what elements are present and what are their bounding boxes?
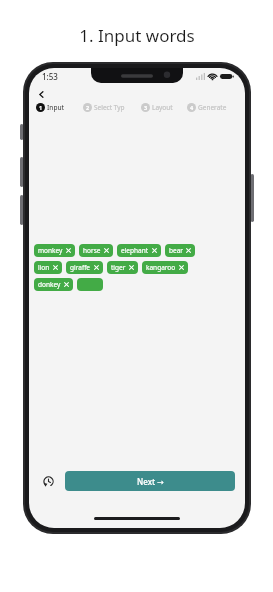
- button[interactable]: monkey: [34, 244, 75, 257]
- staticText: donkey: [38, 280, 61, 289]
- staticText: 4: [190, 104, 194, 111]
- button[interactable]: donkey: [34, 278, 73, 291]
- staticText: Layout: [152, 103, 173, 112]
- button[interactable]: History: [37, 470, 59, 492]
- button[interactable]: Back: [34, 88, 48, 101]
- staticText: kangaroo: [146, 263, 176, 272]
- button[interactable]: bear: [165, 244, 195, 257]
- button[interactable]: giraffe: [66, 261, 103, 274]
- button[interactable]: lion: [34, 261, 62, 274]
- staticText: 1. Input words: [79, 24, 195, 47]
- button[interactable]: 4: [187, 103, 238, 112]
- staticText: horse: [83, 246, 101, 255]
- staticText: Input: [47, 103, 64, 112]
- staticText: 2: [86, 104, 90, 111]
- staticText: elephant: [121, 246, 149, 255]
- staticText: giraffe: [70, 263, 91, 272]
- staticText: monkey: [38, 246, 63, 255]
- button[interactable]: tiger: [107, 261, 138, 274]
- button[interactable]: 3: [141, 103, 187, 112]
- staticText: Select Typ: [94, 103, 125, 112]
- button[interactable]: horse: [79, 244, 113, 257]
- button[interactable]: elephant: [117, 244, 161, 257]
- staticText: 1: [39, 104, 43, 111]
- staticText: tiger: [111, 263, 126, 272]
- staticText: Next →: [137, 476, 164, 487]
- button[interactable]: kangaroo: [142, 261, 188, 274]
- staticText: 3: [144, 104, 148, 111]
- staticText: lion: [38, 263, 50, 272]
- button[interactable]: 2: [83, 103, 141, 112]
- button[interactable]: Next →: [65, 471, 235, 491]
- staticText: bear: [169, 246, 183, 255]
- button[interactable]: Add word: [77, 278, 103, 291]
- button[interactable]: 1: [36, 103, 83, 112]
- staticText: 1:53: [42, 71, 58, 82]
- staticText: Generate: [198, 103, 227, 112]
